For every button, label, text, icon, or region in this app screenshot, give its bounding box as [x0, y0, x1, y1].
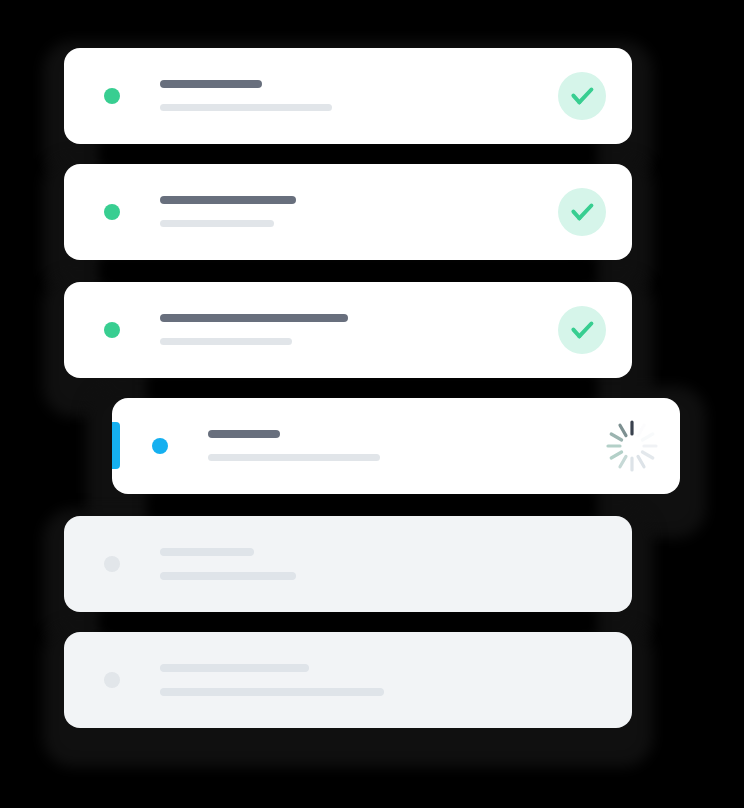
other: Loading: [608, 422, 656, 470]
button[interactable]: [64, 516, 632, 612]
button[interactable]: Completed: [64, 164, 632, 260]
button[interactable]: Completed: [64, 48, 632, 144]
button[interactable]: Completed: [64, 282, 632, 378]
other: Completed: [558, 188, 606, 236]
button[interactable]: [64, 632, 632, 728]
other: Completed: [558, 72, 606, 120]
button[interactable]: Loading: [112, 398, 680, 494]
other: Completed: [558, 306, 606, 354]
